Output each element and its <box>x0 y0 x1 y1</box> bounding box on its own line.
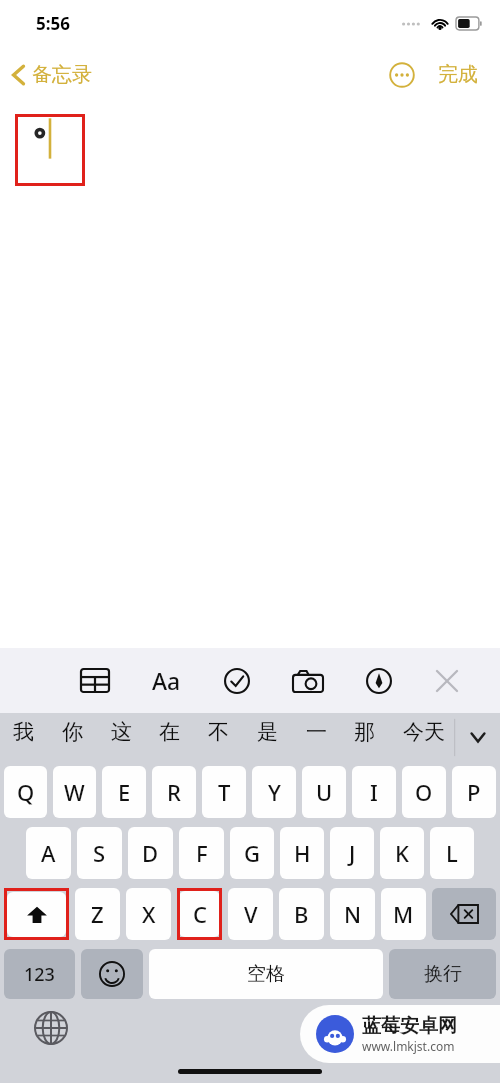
button[interactable]: 空格 <box>149 949 383 999</box>
button[interactable]: P <box>452 766 496 818</box>
staticText: 5:56 <box>36 12 70 35</box>
button[interactable]: Delete <box>432 888 496 940</box>
button[interactable]: 不 <box>203 713 234 751</box>
button[interactable]: 是 <box>252 713 283 751</box>
staticText: 换行 <box>424 962 462 986</box>
staticText: 完成 <box>438 62 478 87</box>
staticText: J <box>349 838 356 868</box>
staticText: C <box>193 899 207 929</box>
staticText: F <box>196 838 208 868</box>
staticText: O <box>415 777 433 807</box>
button[interactable]: 那 <box>349 713 380 751</box>
button[interactable]: D <box>128 827 173 879</box>
button[interactable]: A <box>26 827 71 879</box>
staticText: B <box>294 899 309 929</box>
staticText: H <box>294 838 311 868</box>
staticText: I <box>370 777 378 807</box>
button[interactable]: F <box>179 827 224 879</box>
staticText: 一 <box>306 719 327 745</box>
button[interactable]: Camera <box>285 662 331 700</box>
staticText: S <box>93 838 106 868</box>
staticText: E <box>118 777 131 807</box>
button[interactable]: M <box>381 888 426 940</box>
staticText: 在 <box>159 719 180 745</box>
staticText: Z <box>91 899 104 929</box>
button[interactable]: O <box>402 766 446 818</box>
staticText: X <box>142 899 156 929</box>
staticText: 蓝莓安卓网 <box>362 1014 457 1038</box>
staticText: A <box>41 838 56 868</box>
staticText: Aa <box>152 665 181 696</box>
button[interactable]: 123 <box>4 949 75 999</box>
button[interactable]: 完成 <box>434 56 482 93</box>
button[interactable]: R <box>152 766 196 818</box>
button[interactable]: X <box>126 888 171 940</box>
button[interactable]: Shift <box>7 892 66 937</box>
button[interactable]: 换行 <box>389 949 496 999</box>
staticText: D <box>142 838 159 868</box>
button[interactable]: T <box>202 766 246 818</box>
button[interactable]: Switch language <box>34 1011 68 1045</box>
staticText: T <box>218 777 231 807</box>
staticText: W <box>64 777 85 807</box>
button[interactable]: 今天 <box>398 713 450 751</box>
button[interactable]: H <box>280 827 324 879</box>
button[interactable]: I <box>352 766 396 818</box>
button[interactable]: 我 <box>8 713 39 751</box>
staticText: 备忘录 <box>32 62 92 87</box>
button[interactable]: Z <box>75 888 120 940</box>
button[interactable]: More options <box>384 57 420 93</box>
staticText: K <box>395 838 409 868</box>
button[interactable]: N <box>330 888 375 940</box>
staticText: 这 <box>111 719 132 745</box>
button[interactable]: Expand candidates <box>454 713 500 762</box>
button[interactable]: Q <box>4 766 47 818</box>
button[interactable]: Emoji <box>81 949 143 999</box>
button[interactable]: 这 <box>106 713 137 751</box>
staticText: 我 <box>13 719 34 745</box>
button[interactable]: G <box>230 827 274 879</box>
button[interactable]: Checklist <box>216 660 258 702</box>
button[interactable]: S <box>77 827 122 879</box>
staticText: www.lmkjst.com <box>362 1038 455 1054</box>
button[interactable]: V <box>228 888 273 940</box>
staticText: 不 <box>208 719 229 745</box>
button[interactable]: Markup <box>358 660 400 702</box>
button[interactable]: Text format <box>144 657 189 704</box>
staticText: R <box>167 777 181 807</box>
staticText: 那 <box>354 719 375 745</box>
staticText: M <box>393 899 414 929</box>
button[interactable]: Y <box>252 766 296 818</box>
staticText: Q <box>17 777 35 807</box>
staticText: 123 <box>24 962 55 987</box>
button[interactable]: C <box>179 891 220 937</box>
staticText: 空格 <box>247 962 285 986</box>
button[interactable]: 你 <box>57 713 88 751</box>
staticText: Y <box>268 777 281 807</box>
button[interactable]: B <box>279 888 324 940</box>
button[interactable]: Close keyboard <box>427 661 467 701</box>
staticText: G <box>244 838 260 868</box>
button[interactable] <box>15 114 85 186</box>
staticText: 你 <box>62 719 83 745</box>
staticText: 是 <box>257 719 278 745</box>
button[interactable]: L <box>430 827 474 879</box>
staticText: P <box>467 777 481 807</box>
staticText: N <box>344 899 362 929</box>
button[interactable]: K <box>380 827 424 879</box>
button[interactable]: 一 <box>301 713 332 751</box>
staticText: L <box>446 838 458 868</box>
button[interactable]: E <box>102 766 146 818</box>
staticText: V <box>244 899 258 929</box>
button[interactable]: Table <box>73 661 117 700</box>
button[interactable]: U <box>302 766 346 818</box>
button[interactable]: 在 <box>154 713 185 751</box>
button[interactable]: W <box>53 766 96 818</box>
button[interactable]: J <box>330 827 374 879</box>
button[interactable]: 备忘录 <box>0 56 102 93</box>
staticText: 今天 <box>403 719 445 745</box>
staticText: U <box>316 777 333 807</box>
